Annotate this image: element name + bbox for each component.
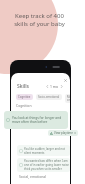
staticText: Keep track of 400 [15, 12, 64, 20]
staticText: Cognitive [18, 95, 31, 99]
button[interactable]: Cognitive [16, 94, 33, 100]
button[interactable]: Close [63, 78, 68, 83]
button[interactable]: You like sudden, larger and not [17, 145, 70, 156]
button[interactable]: Motor [65, 94, 70, 103]
button[interactable]: View playtime [48, 130, 78, 136]
staticText: Motor [67, 95, 70, 102]
button[interactable]: You wanted two differ. when I am [17, 158, 70, 172]
staticText: skills of your baby [14, 20, 65, 28]
staticText: silent moments [24, 151, 45, 155]
button[interactable]: You look at things for longer and [4, 111, 68, 129]
button[interactable]: Socio-emotional [36, 94, 62, 100]
staticText: Skills [17, 83, 30, 90]
staticText: View playtime [54, 131, 73, 135]
staticText: You like sudden, larger and not [24, 147, 65, 151]
staticText: thick you when so its smaller [24, 167, 62, 171]
staticText: Socio-emotional [38, 95, 60, 99]
button[interactable]: 1 mo [46, 84, 63, 89]
staticText: You wanted two differ. when I am [24, 159, 68, 163]
staticText: Cognition [16, 103, 32, 108]
staticText: Social, emotional [19, 174, 47, 179]
staticText: move often than before [12, 120, 48, 124]
staticText: one of in earlier going lower noise [24, 163, 69, 167]
staticText: 1 mo [50, 84, 59, 89]
staticText: You look at things for longer and [12, 116, 62, 120]
